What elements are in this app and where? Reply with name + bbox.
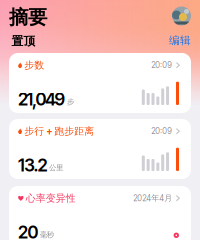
button[interactable]: 步行 + 跑步距离 [9,119,191,179]
staticText: 13.2 [18,155,48,176]
staticText: 步数 [24,59,44,71]
staticText: 步 [67,97,74,106]
staticText: 置顶 [11,34,35,48]
button[interactable]: 心率变异性 [9,186,191,240]
staticText: 毫秒 [40,230,54,239]
button[interactable]: 步数 [9,53,191,113]
staticText: 步行 + 跑步距离 [24,125,94,137]
button[interactable]: 编辑 [169,35,191,46]
staticText: 20:09 [151,126,172,136]
staticText: 20 [18,222,38,240]
staticText: 编辑 [169,34,191,47]
staticText: 心率变异性 [26,192,76,204]
staticText: 摘要 [9,5,47,29]
staticText: 2024年4月 [133,193,172,203]
button[interactable]: Profile [172,6,191,25]
staticText: 公里 [49,163,63,172]
staticText: 20:09 [151,60,172,70]
staticText: 21,049 [18,89,65,110]
